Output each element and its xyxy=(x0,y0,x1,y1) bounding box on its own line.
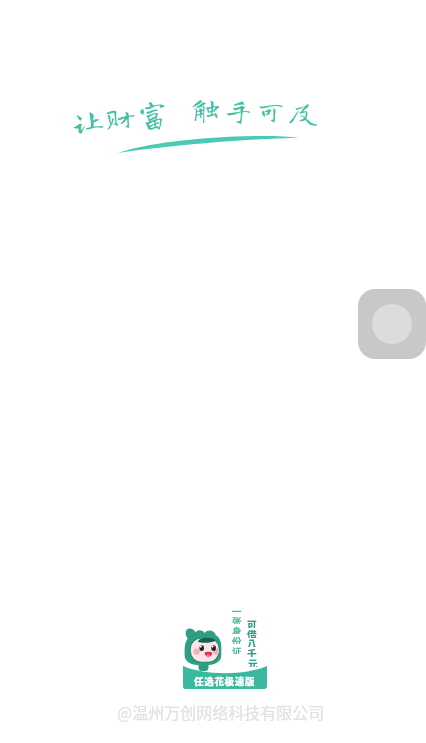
staticText: @温州万创网络科技有限公司 xyxy=(117,700,325,723)
staticText: 可 xyxy=(247,618,257,628)
staticText: 任选花极速版 xyxy=(194,674,256,688)
staticText: 触手可及 xyxy=(191,94,322,127)
staticText: 元 xyxy=(248,657,258,667)
staticText: 借 xyxy=(247,628,257,638)
button[interactable]: Skip xyxy=(358,289,426,359)
staticText: 一 xyxy=(232,604,242,614)
staticText: 八 xyxy=(247,637,257,647)
staticText: 让财富 xyxy=(72,97,172,136)
staticText: 份 xyxy=(232,634,242,644)
staticText: 证 xyxy=(232,644,242,654)
staticText: 张 xyxy=(232,614,242,624)
staticText: 千 xyxy=(247,647,257,657)
staticText: 身 xyxy=(232,624,242,634)
